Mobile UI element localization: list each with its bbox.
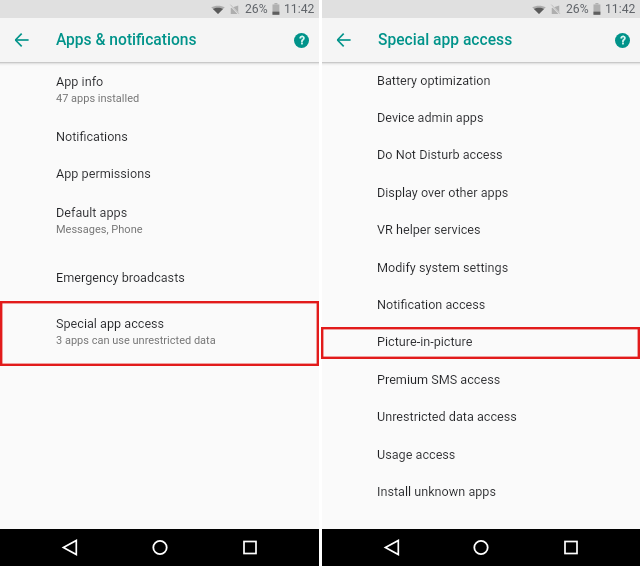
staticText: Unrestricted data access: [377, 409, 517, 424]
button[interactable]: Notification access: [322, 286, 640, 323]
button[interactable]: Default apps: [0, 193, 319, 247]
button[interactable]: Navigate up: [10, 28, 34, 52]
button[interactable]: Modify system settings: [322, 249, 640, 286]
staticText: ?: [620, 34, 626, 47]
staticText: Default apps: [56, 205, 128, 220]
staticText: Device admin apps: [377, 110, 484, 125]
button[interactable]: Unrestricted data access: [322, 398, 640, 435]
button[interactable]: Usage access: [322, 436, 640, 473]
staticText: App info: [56, 74, 104, 89]
staticText: ?: [299, 34, 305, 47]
staticText: Special app access: [56, 316, 165, 331]
staticText: Install unknown apps: [377, 484, 496, 499]
button[interactable]: App info: [0, 62, 319, 116]
button[interactable]: Recent apps: [549, 529, 593, 566]
staticText: Battery optimization: [377, 73, 491, 88]
staticText: App permissions: [56, 166, 151, 181]
staticText: 26%: [566, 2, 589, 16]
staticText: 3 apps can use unrestricted data: [56, 334, 216, 347]
button[interactable]: Premium SMS access: [322, 361, 640, 398]
button[interactable]: Back: [370, 529, 414, 566]
staticText: 11:42: [284, 2, 315, 16]
staticText: Apps & notifications: [56, 31, 197, 49]
button[interactable]: Display over other apps: [322, 174, 640, 211]
button[interactable]: Home: [459, 529, 503, 566]
staticText: Special app access: [378, 31, 513, 49]
staticText: Emergency broadcasts: [56, 270, 185, 285]
staticText: 47 apps installed: [56, 92, 140, 105]
button[interactable]: Home: [138, 529, 182, 566]
button[interactable]: Help: [294, 33, 309, 48]
staticText: Display over other apps: [377, 185, 509, 200]
staticText: Messages, Phone: [56, 223, 143, 236]
button[interactable]: Do Not Disturb access: [322, 136, 640, 173]
button[interactable]: Emergency broadcasts: [0, 258, 319, 296]
button[interactable]: VR helper services: [322, 211, 640, 248]
button[interactable]: Recent apps: [228, 529, 272, 566]
staticText: 11:42: [605, 2, 636, 16]
staticText: Usage access: [377, 447, 456, 462]
staticText: Notification access: [377, 297, 486, 312]
button[interactable]: Special app access: [0, 304, 319, 358]
button[interactable]: Navigate up: [332, 28, 356, 52]
staticText: Notifications: [56, 129, 128, 144]
button[interactable]: Battery optimization: [322, 62, 640, 99]
staticText: 26%: [245, 2, 268, 16]
staticText: Picture-in-picture: [377, 334, 473, 349]
button[interactable]: Picture-in-picture: [322, 323, 640, 360]
button[interactable]: Install unknown apps: [322, 473, 640, 510]
staticText: Premium SMS access: [377, 372, 501, 387]
button[interactable]: App permissions: [0, 154, 319, 192]
staticText: Do Not Disturb access: [377, 147, 503, 162]
button[interactable]: Help: [615, 33, 630, 48]
button[interactable]: Device admin apps: [322, 99, 640, 136]
staticText: VR helper services: [377, 222, 481, 237]
staticText: Modify system settings: [377, 260, 509, 275]
button[interactable]: Back: [48, 529, 92, 566]
button[interactable]: Notifications: [0, 117, 319, 155]
